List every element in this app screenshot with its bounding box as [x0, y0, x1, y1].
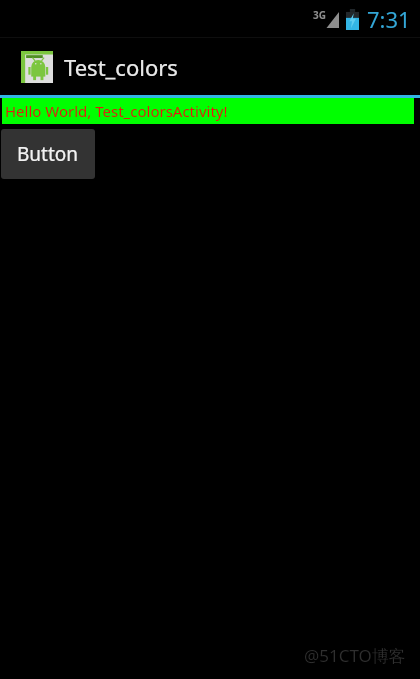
staticText: Button: [17, 141, 79, 167]
other: Mobile signal 3G: [313, 9, 339, 30]
staticText: Test_colors: [64, 52, 178, 82]
staticText: @51CTO博客: [304, 644, 406, 667]
staticText: 3G: [313, 8, 326, 22]
button[interactable]: Button: [1, 129, 95, 179]
staticText: Hello World, Test_colorsActivity!: [5, 101, 228, 121]
other: Battery charging: [346, 9, 359, 30]
other: App icon: [21, 51, 53, 83]
staticText: 7:31: [367, 4, 411, 34]
